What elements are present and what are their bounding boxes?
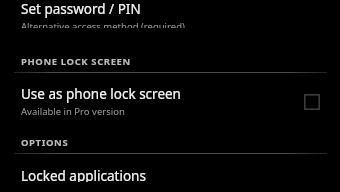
staticText: OPTIONS: [21, 136, 69, 149]
staticText: Alternative access method (required): [21, 20, 185, 28]
button[interactable]: Use as phone lock screen checkbox: [300, 90, 324, 114]
button[interactable]: Set password / PIN: [0, 0, 340, 36]
staticText: PHONE LOCK SCREEN: [21, 55, 131, 68]
staticText: Set password / PIN: [21, 0, 141, 18]
staticText: Available in Pro version: [21, 105, 125, 118]
button[interactable]: Use as phone lock screen: [0, 81, 340, 124]
staticText: Locked applications: [21, 167, 146, 182]
staticText: Use as phone lock screen: [21, 85, 181, 103]
button[interactable]: Locked applications: [0, 165, 340, 192]
